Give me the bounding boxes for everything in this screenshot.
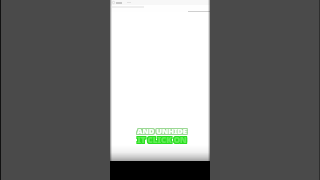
staticText: AND UNHIDE — [138, 126, 188, 136]
staticText: AND UNHIDE — [138, 125, 188, 135]
staticText: IT CLICK ON — [137, 133, 187, 144]
staticText: IT CLICK ON — [137, 135, 187, 146]
staticText: IT CLICK ON — [138, 134, 188, 145]
staticText: AND UNHIDE — [136, 126, 186, 136]
staticText: IT CLICK ON — [136, 133, 186, 144]
staticText: AND UNHIDE — [138, 127, 188, 137]
staticText: AND UNHIDE — [137, 127, 187, 137]
staticText: AND UNHIDE — [136, 127, 186, 137]
staticText: IT CLICK ON — [138, 135, 188, 146]
staticText: IT CLICK ON — [137, 135, 187, 146]
staticText: AND UNHIDE — [138, 126, 188, 136]
staticText: AND UNHIDE — [136, 125, 186, 135]
staticText: AND UNHIDE — [136, 127, 186, 137]
staticText: IT CLICK ON — [138, 133, 188, 144]
staticText: AND UNHIDE — [136, 125, 186, 135]
staticText: AND UNHIDE — [137, 126, 187, 136]
staticText: AND UNHIDE — [137, 127, 187, 137]
staticText: IT CLICK ON — [136, 134, 186, 145]
staticText: IT CLICK ON — [138, 134, 188, 145]
staticText: IT CLICK ON — [136, 134, 186, 145]
staticText: IT CLICK ON — [136, 135, 186, 146]
staticText: AND UNHIDE — [137, 125, 187, 135]
staticText: IT CLICK ON — [138, 133, 188, 144]
staticText: AND UNHIDE — [138, 127, 188, 137]
staticText: IT CLICK ON — [136, 135, 186, 146]
staticText: AND UNHIDE — [138, 125, 188, 135]
button[interactable]: Tabs — [112, 1, 115, 4]
staticText: AND UNHIDE — [136, 126, 186, 136]
staticText: AND UNHIDE — [137, 125, 187, 135]
staticText: IT CLICK ON — [136, 133, 186, 144]
staticText: IT CLICK ON — [137, 133, 187, 144]
staticText: IT CLICK ON — [137, 134, 187, 145]
staticText: IT CLICK ON — [138, 135, 188, 146]
